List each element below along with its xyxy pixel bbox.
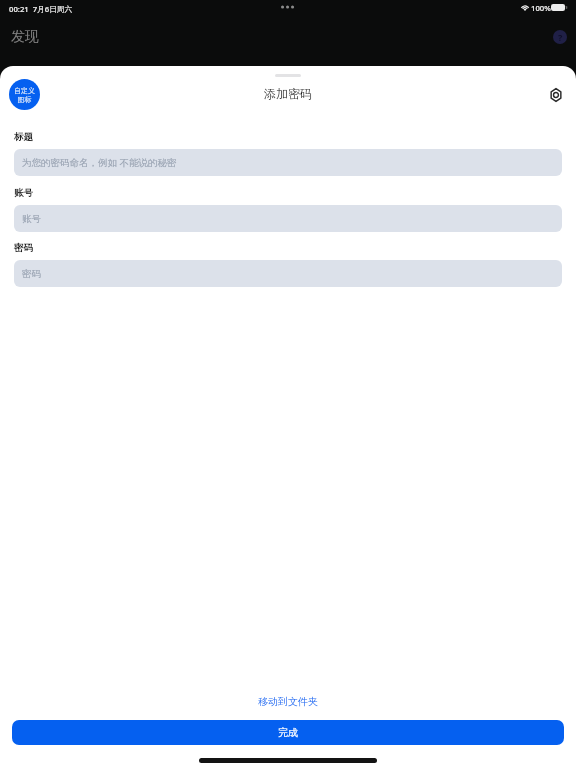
button[interactable]: 自定义 图标	[9, 79, 40, 110]
button[interactable]: 完成	[12, 720, 564, 745]
staticText: 移动到文件夹	[258, 695, 318, 708]
button[interactable]: 账号	[14, 205, 562, 232]
staticText: 密码	[22, 268, 41, 280]
button[interactable]: 为您的密码命名，例如 不能说的秘密	[14, 149, 562, 176]
staticText: 00:21 7月6日周六	[9, 4, 73, 15]
staticText: 账号	[14, 187, 33, 199]
staticText: 发现	[11, 28, 39, 46]
staticText: 密码	[14, 242, 33, 254]
staticText: 账号	[22, 213, 41, 225]
staticText: 完成	[278, 726, 298, 739]
staticText: 100%	[531, 3, 551, 13]
button[interactable]: Settings	[544, 83, 567, 106]
button[interactable]: 密码	[14, 260, 562, 287]
button[interactable]: 移动到文件夹	[0, 691, 576, 711]
staticText: ?	[558, 31, 563, 43]
staticText: 添加密码	[264, 86, 312, 101]
staticText: 自定义 图标	[14, 86, 35, 104]
button[interactable]: Help	[553, 30, 567, 44]
staticText: 为您的密码命名，例如 不能说的秘密	[22, 156, 177, 169]
staticText: 标题	[14, 131, 33, 143]
